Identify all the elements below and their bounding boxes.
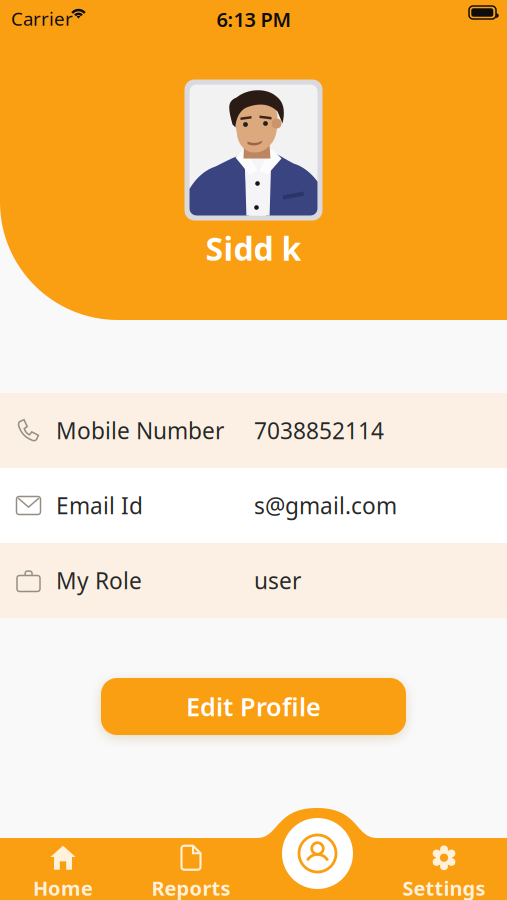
staticText: Home: [33, 875, 93, 900]
button[interactable]: Mobile Number: [0, 393, 507, 468]
staticText: 6:13 PM: [216, 6, 291, 33]
staticText: 7038852114: [254, 415, 384, 445]
button[interactable]: Email Id: [0, 468, 507, 543]
staticText: Sidd k: [205, 227, 301, 269]
staticText: Reports: [151, 875, 230, 900]
button[interactable]: Edit Profile: [101, 678, 406, 735]
staticText: s@gmail.com: [254, 490, 397, 520]
staticText: Carrier: [11, 6, 73, 31]
staticText: Mobile Number: [56, 415, 224, 445]
staticText: My Role: [56, 565, 142, 595]
staticText: Edit Profile: [186, 690, 321, 723]
button[interactable]: Profile: [282, 818, 353, 889]
staticText: Email Id: [56, 490, 143, 520]
button[interactable]: Settings: [381, 842, 507, 900]
button[interactable]: Reports: [128, 842, 254, 900]
staticText: user: [254, 565, 301, 595]
button[interactable]: Home: [0, 842, 126, 900]
button[interactable]: My Role: [0, 543, 507, 618]
staticText: Settings: [402, 875, 485, 900]
